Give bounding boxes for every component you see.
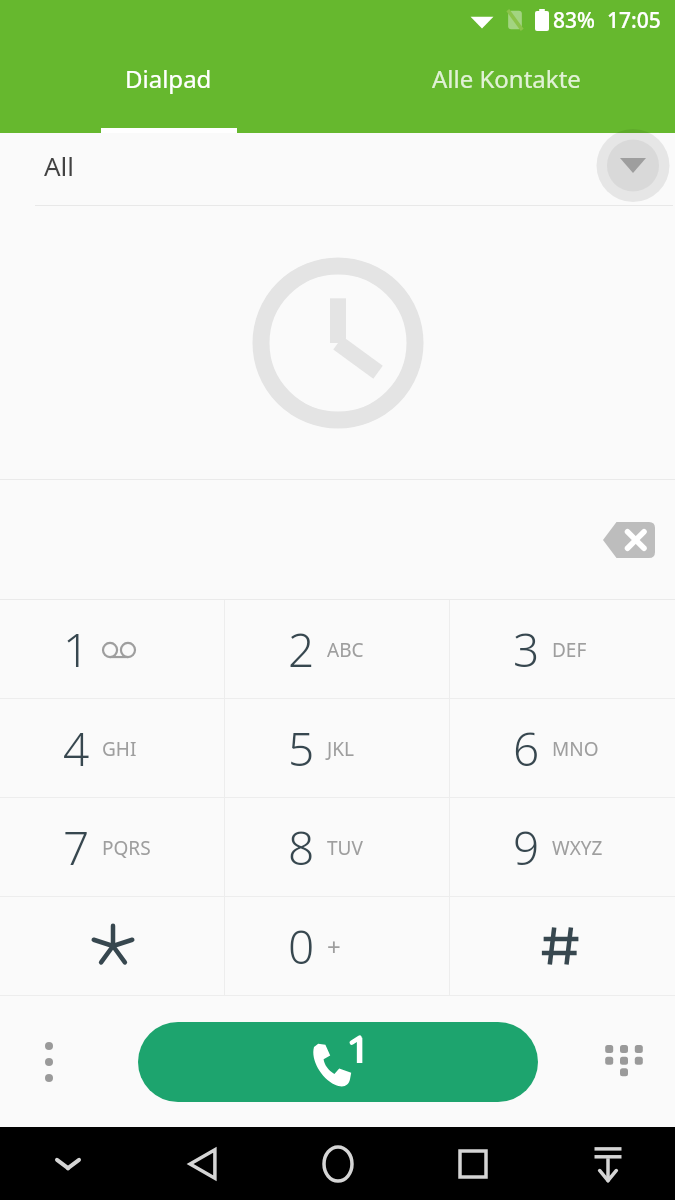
staticText: GHI	[102, 736, 137, 762]
button[interactable]: 3	[450, 600, 675, 698]
staticText: 9	[513, 816, 540, 879]
staticText: 17:05	[607, 6, 661, 35]
staticText: Dialpad	[125, 62, 212, 95]
staticText: +	[327, 930, 341, 963]
staticText: TUV	[327, 835, 363, 861]
button[interactable]	[450, 897, 675, 995]
button[interactable]: 4	[0, 699, 225, 797]
staticText: JKL	[327, 736, 354, 762]
button[interactable]	[0, 897, 225, 995]
staticText: 6	[513, 717, 540, 780]
staticText: 2	[288, 618, 315, 681]
staticText: All	[44, 148, 75, 183]
button[interactable]: Filter dropdown	[585, 129, 675, 202]
staticText: 3	[513, 618, 540, 681]
button[interactable]: 6	[450, 699, 675, 797]
button[interactable]: Hide keyboard	[0, 1127, 135, 1200]
button[interactable]: Dialpad	[591, 1027, 661, 1097]
staticText: DEF	[552, 637, 587, 663]
button[interactable]: 1	[0, 600, 225, 698]
staticText: WXYZ	[552, 835, 603, 861]
button[interactable]: Home	[270, 1127, 405, 1200]
staticText: PQRS	[102, 835, 151, 861]
staticText: 0	[288, 915, 315, 978]
button[interactable]: Recents	[405, 1127, 540, 1200]
staticText: 4	[63, 717, 90, 780]
button[interactable]: 0	[225, 897, 450, 995]
staticText: MNO	[552, 736, 599, 762]
staticText: 1	[63, 618, 90, 681]
button[interactable]: 2	[225, 600, 450, 698]
staticText: 5	[288, 717, 315, 780]
button[interactable]: Alle Kontakte	[337, 40, 675, 133]
button[interactable]	[0, 133, 675, 206]
staticText: ABC	[327, 637, 364, 663]
button[interactable]: 5	[225, 699, 450, 797]
button[interactable]: Call	[138, 1022, 538, 1102]
button[interactable]: 9	[450, 798, 675, 896]
staticText: 83%	[553, 6, 595, 35]
button[interactable]: Back	[135, 1127, 270, 1200]
button[interactable]: 8	[225, 798, 450, 896]
button[interactable]: More options	[14, 1027, 84, 1097]
button[interactable]: Download	[540, 1127, 675, 1200]
button[interactable]: 7	[0, 798, 225, 896]
button[interactable]: Backspace	[591, 510, 667, 570]
staticText: 8	[288, 816, 315, 879]
staticText: Alle Kontakte	[432, 62, 581, 95]
button[interactable]: Dialpad	[0, 40, 337, 133]
staticText: 7	[63, 816, 90, 879]
